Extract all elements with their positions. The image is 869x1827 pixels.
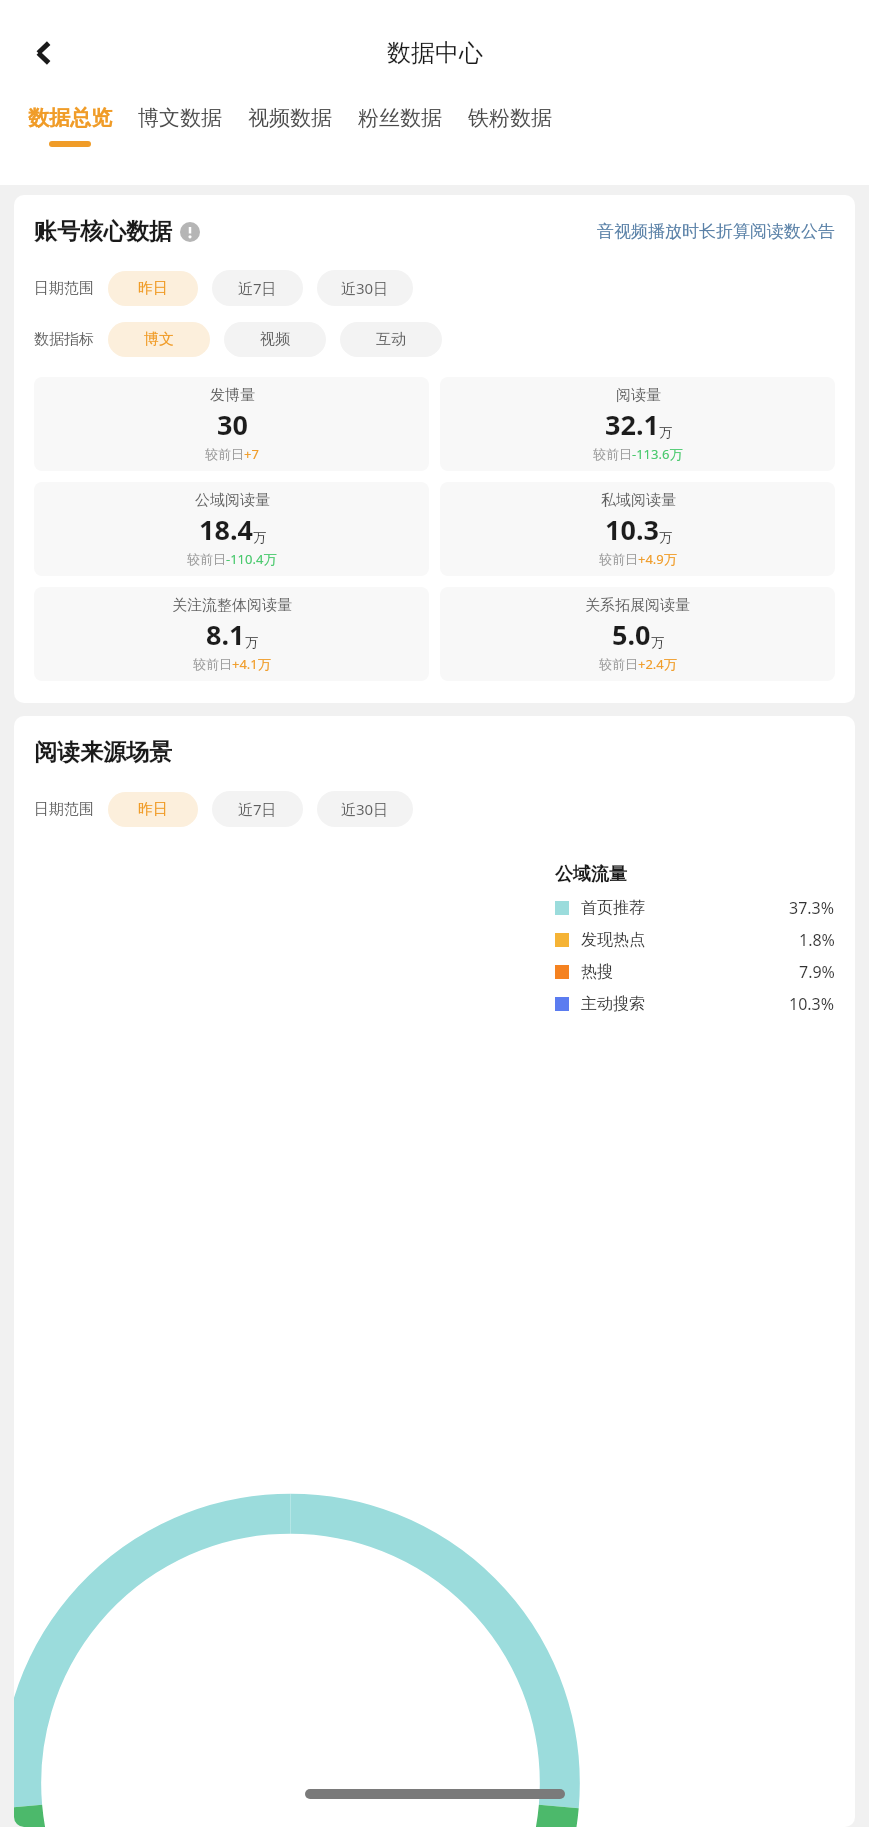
button[interactable]: 博文 (108, 322, 210, 357)
button[interactable]: 阅读量 (440, 377, 835, 471)
button[interactable]: 博文数据 (138, 105, 222, 141)
button[interactable]: 音视频播放时长折算阅读数公告 (597, 221, 835, 242)
staticText: 私域阅读量 (601, 491, 676, 510)
staticText: 较前日+2.4万 (599, 655, 677, 673)
staticText: 日期范围 (34, 279, 94, 298)
button[interactable]: 近30日 (317, 791, 413, 827)
staticText: 日期范围 (34, 800, 94, 819)
button[interactable]: 铁粉数据 (468, 105, 552, 141)
button[interactable]: 互动 (340, 322, 442, 357)
staticText: 万 (659, 529, 672, 545)
staticText: 8.1 (206, 616, 245, 653)
button[interactable]: 数据总览 (28, 105, 112, 147)
staticText: 较前日-110.4万 (187, 550, 277, 568)
button[interactable]: 近7日 (212, 791, 303, 827)
staticText: 万 (659, 424, 672, 440)
button[interactable]: 昨日 (108, 792, 198, 827)
staticText: 较前日+4.1万 (193, 655, 271, 673)
staticText: 数据总览 (28, 105, 112, 131)
staticText: 公域阅读量 (195, 491, 270, 510)
staticText: 1.8% (799, 929, 835, 951)
button[interactable]: 近7日 (212, 270, 303, 306)
staticText: 万 (245, 634, 258, 650)
staticText: 30 (217, 406, 248, 443)
staticText: 视频 (260, 330, 290, 349)
staticText: 互动 (376, 330, 406, 349)
staticText: 发博量 (210, 386, 255, 405)
staticText: 万 (253, 529, 266, 545)
button[interactable]: 近30日 (317, 270, 413, 306)
staticText: 32.1 (605, 406, 659, 443)
staticText: 18.4 (199, 511, 253, 548)
button[interactable]: Back (14, 23, 74, 83)
staticText: 关系拓展阅读量 (585, 596, 690, 615)
staticText: 10.3% (789, 993, 835, 1015)
staticText: 万 (651, 634, 664, 650)
staticText: 主动搜索 (581, 994, 645, 1014)
staticText: 昨日 (138, 800, 168, 819)
staticText: 阅读量 (616, 386, 661, 405)
staticText: 近7日 (238, 799, 277, 819)
staticText: 铁粉数据 (468, 105, 552, 131)
staticText: 公域流量 (555, 863, 627, 886)
button[interactable]: Info (180, 222, 200, 242)
staticText: 10.3 (605, 511, 659, 548)
staticText: 昨日 (138, 279, 168, 298)
staticText: 发现热点 (581, 930, 645, 950)
staticText: 数据指标 (34, 330, 94, 349)
staticText: 博文 (144, 330, 174, 349)
button[interactable]: 视频数据 (248, 105, 332, 141)
staticText: 粉丝数据 (358, 105, 442, 131)
button[interactable]: 视频 (224, 322, 326, 357)
staticText: 7.9% (799, 961, 835, 983)
staticText: 数据中心 (387, 38, 483, 68)
staticText: 较前日-113.6万 (593, 445, 683, 463)
staticText: 近30日 (341, 799, 389, 819)
staticText: 关注流整体阅读量 (172, 596, 292, 615)
staticText: 近7日 (238, 278, 277, 298)
button[interactable]: 关注流整体阅读量 (34, 587, 429, 681)
button[interactable]: 粉丝数据 (358, 105, 442, 141)
staticText: 视频数据 (248, 105, 332, 131)
staticText: 5.0 (612, 616, 651, 653)
button[interactable]: 私域阅读量 (440, 482, 835, 576)
staticText: 较前日+4.9万 (599, 550, 677, 568)
staticText: 近30日 (341, 278, 389, 298)
button[interactable]: 昨日 (108, 271, 198, 306)
staticText: 37.3% (789, 897, 835, 919)
button[interactable]: 公域阅读量 (34, 482, 429, 576)
staticText: 账号核心数据 (34, 217, 172, 246)
staticText: 较前日+7 (205, 445, 259, 463)
staticText: 阅读来源场景 (34, 738, 172, 767)
staticText: 博文数据 (138, 105, 222, 131)
button[interactable]: 发博量 (34, 377, 429, 471)
staticText: 热搜 (581, 962, 613, 982)
staticText: 首页推荐 (581, 898, 645, 918)
button[interactable]: 关系拓展阅读量 (440, 587, 835, 681)
